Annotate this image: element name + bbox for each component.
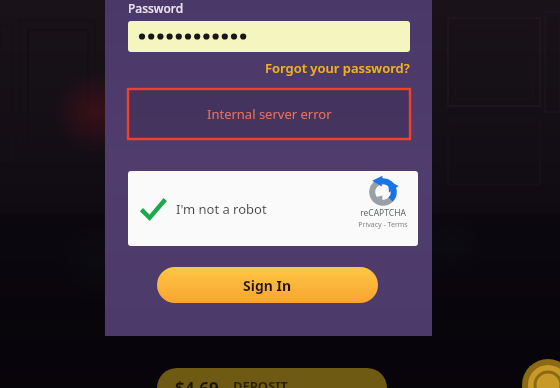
staticText: $4.69	[175, 377, 219, 388]
other: Balance 4.69	[157, 368, 387, 388]
button[interactable]: I'm not a robot	[128, 171, 418, 246]
button[interactable]: Forgot your password?	[265, 59, 410, 77]
staticText: Internal server error	[207, 105, 332, 123]
staticText: Sign In	[243, 276, 292, 295]
button[interactable]	[128, 21, 410, 52]
staticText: I'm not a robot	[176, 200, 267, 218]
staticText: Forgot your password?	[265, 59, 410, 77]
staticText: reCAPTCHA	[360, 207, 406, 219]
button[interactable]: Sign In	[157, 267, 378, 303]
staticText: Password	[128, 0, 184, 16]
staticText: Privacy - Terms	[358, 220, 408, 230]
staticText: DEPOSIT	[233, 377, 288, 388]
